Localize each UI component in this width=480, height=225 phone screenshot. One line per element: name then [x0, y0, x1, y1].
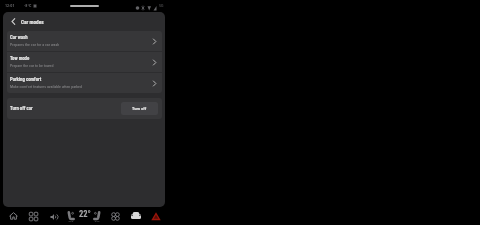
button[interactable]: Turn off [121, 102, 158, 115]
staticText: Tow mode [10, 56, 30, 62]
staticText: Parking comfort [10, 77, 42, 83]
staticText: Make comfort features available when par… [10, 84, 82, 89]
staticText: 12:01 [5, 3, 15, 8]
button[interactable] [151, 212, 161, 221]
button[interactable] [29, 212, 38, 221]
staticText: -8°C [24, 3, 32, 8]
staticText: Prepare the car to be towed [10, 63, 54, 68]
button[interactable] [50, 213, 58, 221]
button[interactable]: Parking comfort [7, 73, 162, 93]
button[interactable]: Car modes [3, 12, 165, 31]
staticText: 5G [159, 3, 164, 8]
staticText: Turn off car [10, 106, 33, 112]
staticText: Car modes [21, 19, 44, 25]
button[interactable] [131, 212, 141, 219]
button[interactable]: Car wash [7, 31, 162, 51]
button[interactable] [9, 212, 18, 220]
staticText: Prepares the car for a car wash [10, 42, 60, 47]
staticText: 22° [79, 209, 91, 219]
staticText: Car wash [10, 35, 28, 41]
button[interactable] [111, 212, 120, 221]
button[interactable] [67, 212, 74, 222]
button[interactable]: Tow mode [7, 52, 162, 72]
staticText: Turn off [132, 106, 147, 111]
button[interactable] [94, 212, 101, 222]
button[interactable]: 22° [79, 209, 91, 219]
